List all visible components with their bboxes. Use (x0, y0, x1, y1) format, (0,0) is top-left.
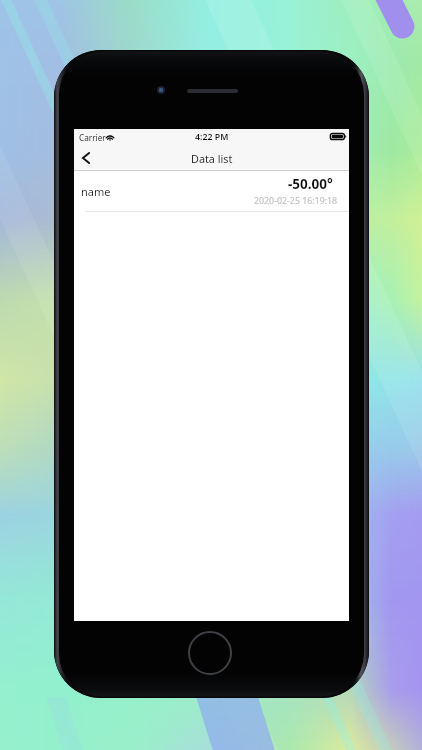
staticText: -50.00° (288, 175, 333, 193)
staticText: 2020-02-25 16:19:18 (254, 195, 338, 207)
staticText: Data list (191, 151, 233, 166)
staticText: name (81, 184, 111, 199)
staticText: Carrier (79, 132, 106, 143)
button[interactable]: Back (74, 145, 100, 171)
staticText: 4:22 PM (195, 131, 229, 143)
button[interactable]: name (74, 171, 349, 212)
